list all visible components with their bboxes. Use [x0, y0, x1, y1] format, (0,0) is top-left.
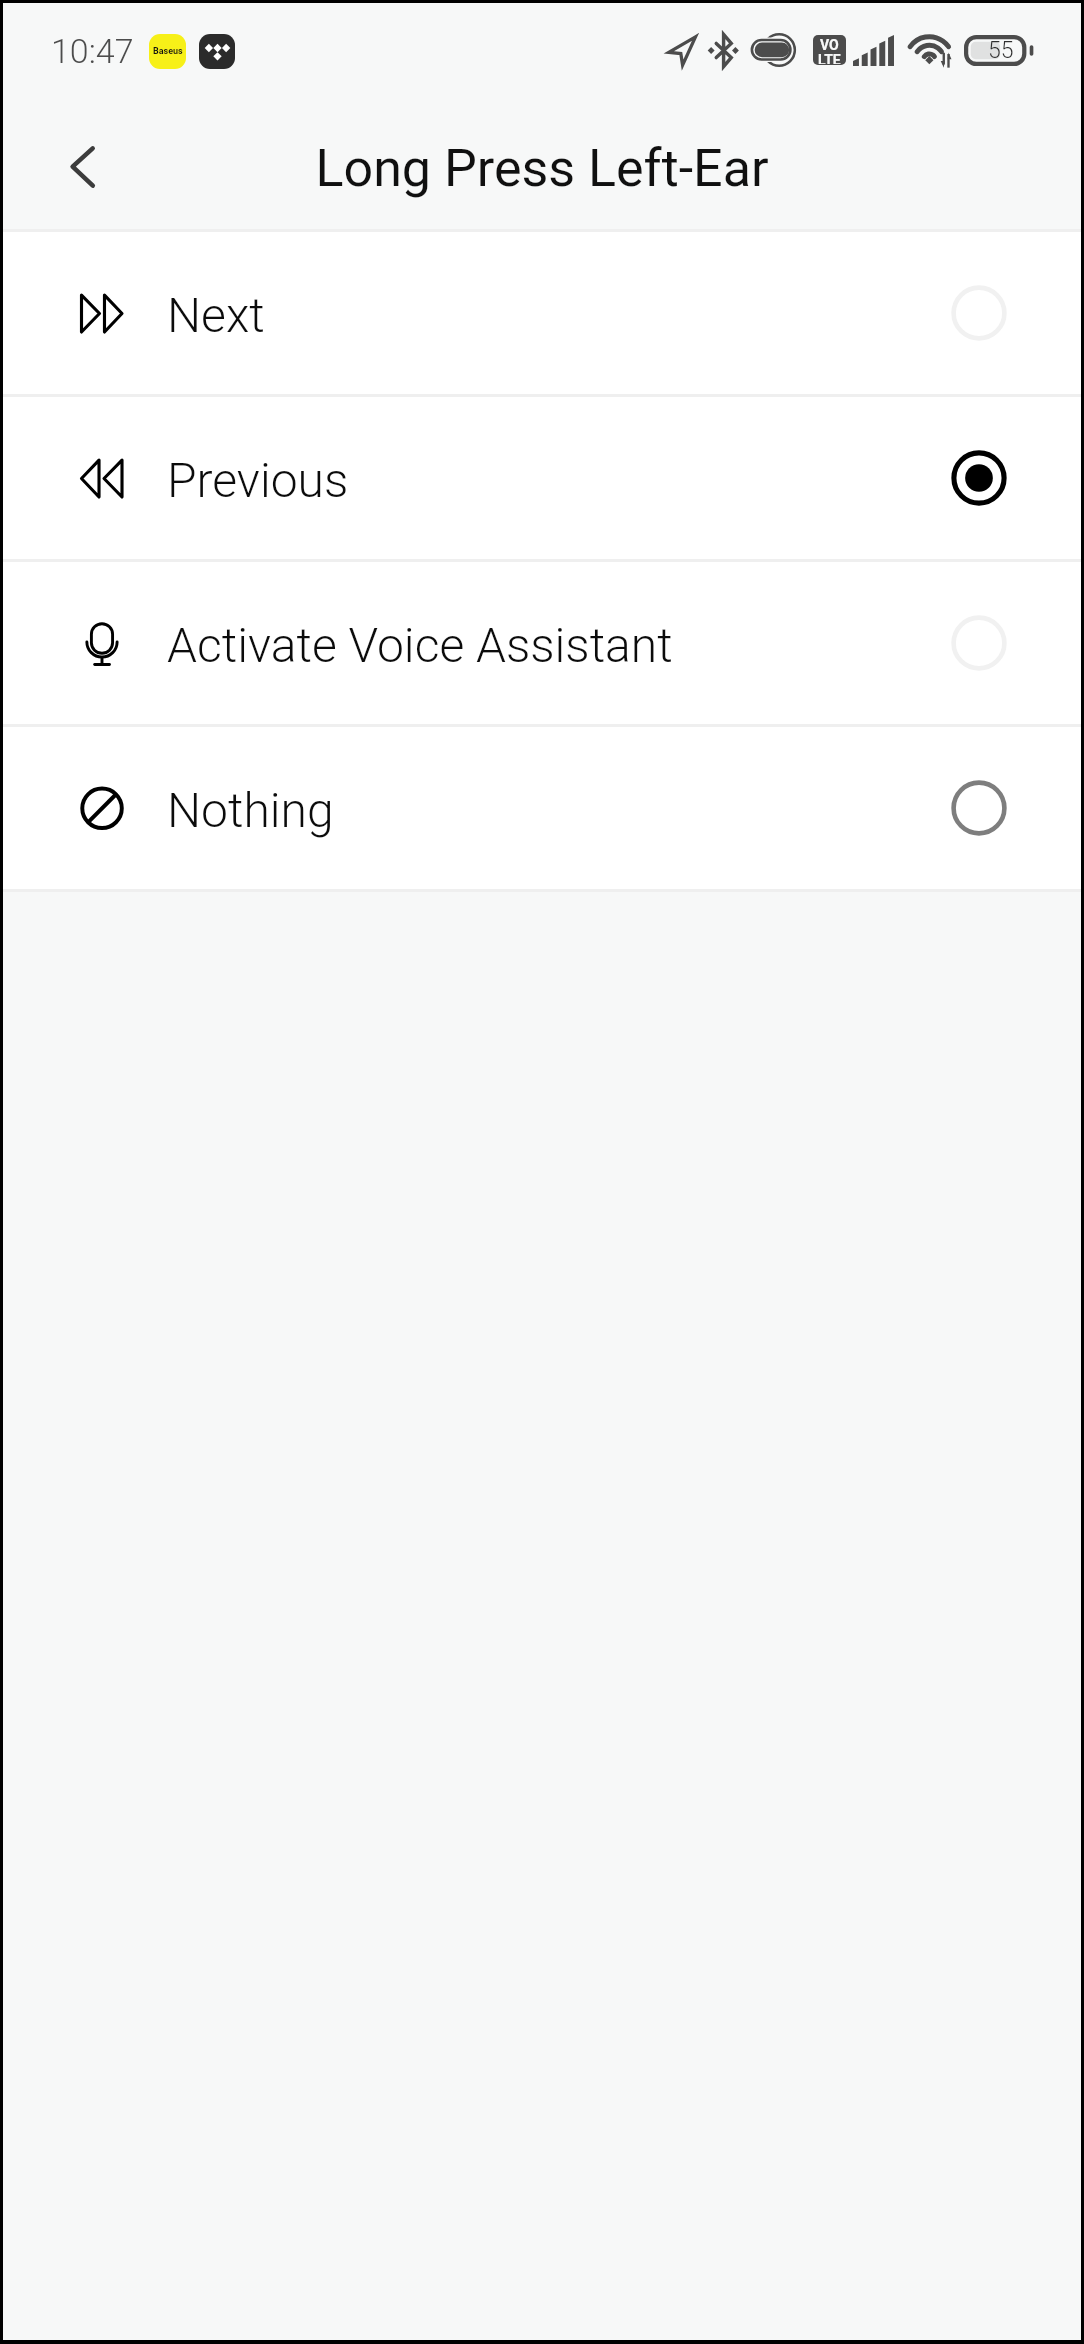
button[interactable]: Activate Voice Assistant — [3, 562, 1081, 724]
staticText: Nothing — [167, 782, 334, 838]
staticText: Long Press Left-Ear — [315, 138, 769, 199]
button[interactable]: Back — [41, 123, 129, 211]
staticText: Activate Voice Assistant — [167, 617, 673, 673]
button[interactable]: Previous — [3, 397, 1081, 559]
staticText: LTE — [818, 52, 841, 64]
button[interactable]: Nothing — [3, 727, 1081, 889]
staticText: Next — [167, 287, 265, 343]
staticText: Previous — [167, 452, 349, 508]
button[interactable]: Next — [3, 232, 1081, 394]
staticText: VO — [820, 37, 839, 53]
staticText: Baseus — [153, 46, 183, 57]
staticText: 10:47 — [51, 31, 134, 71]
staticText: 55 — [988, 37, 1014, 64]
